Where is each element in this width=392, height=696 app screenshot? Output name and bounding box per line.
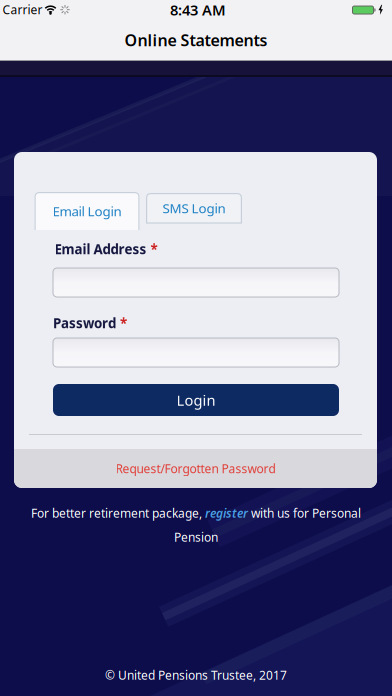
staticText: with us for Personal [248, 505, 361, 521]
staticText: Login [176, 390, 215, 410]
staticText: * [120, 314, 127, 332]
staticText: register [205, 505, 248, 521]
button[interactable]: SMS Login [146, 193, 242, 223]
staticText: 8:43 AM [170, 0, 226, 19]
staticText: Email Address [54, 240, 146, 258]
button[interactable]: Request/Forgotten Password [14, 449, 377, 488]
staticText: © United Pensions Trustee, 2017 [105, 667, 287, 683]
button[interactable]: Login [53, 384, 339, 416]
button[interactable]: register [205, 505, 248, 521]
staticText: Password [53, 314, 116, 332]
staticText: For better retirement package, [31, 505, 205, 521]
staticText: Carrier [2, 2, 42, 18]
staticText: Pension [174, 529, 218, 545]
staticText: Email Login [52, 202, 121, 220]
staticText: Request/Forgotten Password [115, 460, 275, 476]
button[interactable]: Email Login [34, 192, 139, 230]
staticText: * [150, 240, 157, 258]
staticText: Online Statements [124, 29, 267, 51]
staticText: SMS Login [162, 199, 225, 217]
